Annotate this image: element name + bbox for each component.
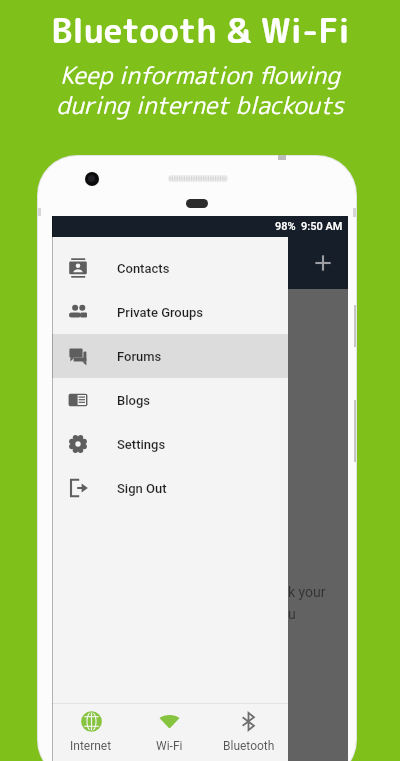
button[interactable]: Forums	[52, 334, 288, 378]
staticText: Internet	[70, 739, 112, 753]
staticText: 98% 9:50 AM	[275, 220, 343, 233]
staticText: Bluetooth & Wi-Fi	[51, 6, 350, 53]
staticText: Sign Out	[117, 481, 167, 496]
button[interactable]: Bluetooth	[209, 704, 288, 759]
staticText: Keep information flowing during internet…	[56, 58, 344, 121]
staticText: Wi-Fi	[156, 739, 183, 753]
button[interactable]: Add	[310, 250, 336, 276]
button[interactable]: Wi-Fi	[130, 704, 209, 759]
staticText: Private Groups	[117, 305, 203, 320]
staticText: Settings	[117, 437, 166, 452]
staticText: Forums	[117, 349, 162, 364]
button[interactable]: Contacts	[52, 246, 288, 290]
button[interactable]: Blogs	[52, 378, 288, 422]
staticText: Blogs	[117, 393, 151, 408]
button[interactable]: Sign Out	[52, 466, 288, 510]
button[interactable]: Private Groups	[52, 290, 288, 334]
staticText: k your u	[288, 584, 326, 623]
button[interactable]: Internet	[52, 704, 130, 759]
staticText: Bluetooth	[223, 739, 275, 753]
button[interactable]: Settings	[52, 422, 288, 466]
staticText: Contacts	[117, 261, 170, 276]
